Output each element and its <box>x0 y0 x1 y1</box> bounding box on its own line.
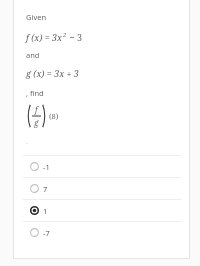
staticText: 1 <box>43 206 48 216</box>
staticText: Given <box>26 12 47 22</box>
staticText: − 3 <box>67 31 82 43</box>
staticText: g (x) = 3x + 3 <box>26 67 79 79</box>
staticText: 7 <box>43 184 48 194</box>
button[interactable]: 1 <box>13 200 190 221</box>
staticText: -7 <box>43 228 50 238</box>
staticText: f (x) = 3x <box>26 31 63 43</box>
button[interactable]: 7 <box>13 178 190 199</box>
button[interactable]: -7 <box>13 222 190 243</box>
staticText: g <box>34 117 39 128</box>
staticText: -1 <box>43 162 50 172</box>
staticText: . <box>26 138 28 146</box>
staticText: 2 <box>63 31 67 39</box>
staticText: f <box>35 104 38 115</box>
button[interactable]: -1 <box>13 156 190 177</box>
staticText: , find <box>26 88 44 98</box>
staticText: and <box>26 50 40 60</box>
staticText: (8) <box>49 111 59 121</box>
